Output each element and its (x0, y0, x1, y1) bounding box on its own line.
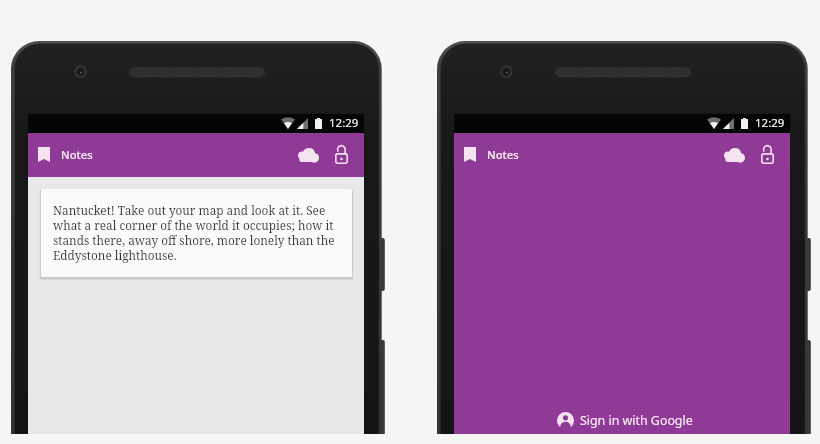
staticText: Sign in with Google (580, 412, 693, 429)
button[interactable]: Sync with cloud (292, 133, 324, 177)
button[interactable]: Nantucket! Take out your map and look at… (41, 189, 352, 277)
staticText: 12:29 (755, 115, 785, 131)
button[interactable]: Sync with cloud (718, 133, 750, 177)
button[interactable]: Sign in with Google (454, 401, 790, 434)
staticText: Notes (61, 147, 93, 162)
button[interactable]: Open navigation (30, 133, 58, 175)
staticText: Nantucket! Take out your map and look at… (53, 202, 341, 264)
staticText: 12:29 (329, 115, 359, 131)
button[interactable]: Unlock (326, 133, 356, 177)
button[interactable]: Unlock (752, 133, 782, 177)
staticText: Notes (487, 147, 519, 162)
button[interactable]: Open navigation (456, 133, 484, 175)
